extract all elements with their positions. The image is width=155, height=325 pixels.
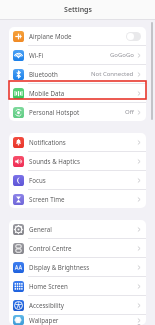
staticText: GoGoGo [110,51,134,59]
button[interactable]: Home Screen [9,277,146,296]
staticText: Display & Brightness [29,263,90,271]
button[interactable]: Wallpaper [9,315,146,325]
staticText: Notifications [29,138,66,146]
staticText: Accessibility [29,301,64,309]
staticText: Mobile Data [29,89,65,97]
staticText: Settings [64,5,92,15]
staticText: Screen Time [29,195,65,203]
staticText: Control Centre [29,244,72,252]
staticText: Focus [29,176,46,184]
staticText: Home Screen [29,282,68,290]
staticText: General [29,225,52,233]
button[interactable]: General [9,220,146,239]
button[interactable]: Accessibility [9,296,146,315]
staticText: Wallpaper [29,316,59,324]
button[interactable]: Personal Hotspot [9,103,146,121]
staticText: Not Connected [91,70,134,78]
button[interactable]: Focus [9,171,146,190]
button[interactable]: Display & Brightness [9,258,146,277]
button[interactable]: Wi-Fi [9,46,146,65]
button[interactable]: Control Centre [9,239,146,258]
button[interactable]: Sounds & Haptics [9,152,146,171]
button[interactable]: Airplane Mode [9,27,146,46]
staticText: Off [125,108,134,116]
button[interactable]: Notifications [9,133,146,152]
staticText: Personal Hotspot [29,108,80,116]
staticText: Wi-Fi [29,51,44,59]
staticText: Sounds & Haptics [29,157,80,165]
button[interactable]: Bluetooth [9,65,146,84]
button[interactable]: Mobile Data [9,84,146,103]
staticText: Airplane Mode [29,32,72,40]
staticText: Bluetooth [29,70,58,78]
button[interactable]: Screen Time [9,190,146,208]
